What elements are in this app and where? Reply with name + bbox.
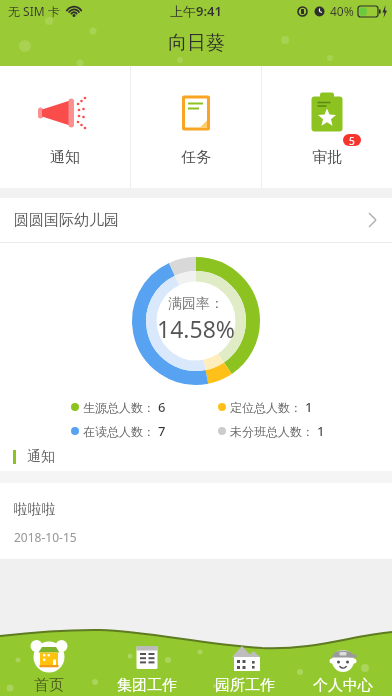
button[interactable]: 个人中心: [294, 640, 392, 696]
button[interactable]: 啦啦啦: [0, 483, 392, 560]
staticText: 上午9:41: [170, 2, 222, 20]
button[interactable]: 5: [262, 66, 392, 188]
staticText: 40%: [330, 3, 354, 19]
staticText: 14.58%: [157, 313, 235, 344]
staticText: 集团工作: [117, 676, 177, 695]
staticText: 定位总人数：: [230, 400, 302, 415]
staticText: 未分班总人数：: [230, 424, 314, 439]
staticText: 任务: [181, 148, 211, 167]
staticText: 圆圆国际幼儿园: [14, 211, 119, 230]
button[interactable]: 任务: [131, 66, 261, 188]
staticText: 5: [349, 134, 355, 146]
staticText: 个人中心: [313, 676, 373, 695]
staticText: 无 SIM 卡: [8, 3, 60, 19]
staticText: 1: [317, 422, 325, 440]
button[interactable]: 园所工作: [196, 640, 294, 696]
staticText: 通知: [27, 448, 55, 466]
staticText: 向日葵: [168, 31, 225, 55]
staticText: 啦啦啦: [14, 501, 56, 519]
staticText: 7: [158, 422, 166, 440]
staticText: 园所工作: [215, 676, 275, 695]
staticText: 生源总人数：: [83, 400, 155, 415]
staticText: 6: [158, 398, 166, 416]
staticText: 审批: [312, 148, 342, 167]
staticText: 1: [305, 398, 313, 416]
staticText: 2018-10-15: [14, 529, 77, 545]
staticText: 首页: [34, 676, 64, 695]
button[interactable]: 通知: [0, 66, 130, 188]
button[interactable]: 圆圆国际幼儿园: [0, 198, 392, 242]
button[interactable]: 集团工作: [98, 640, 196, 696]
staticText: 在读总人数：: [83, 424, 155, 439]
staticText: 通知: [50, 148, 80, 167]
staticText: 满园率：: [168, 295, 224, 313]
button[interactable]: 首页: [0, 640, 98, 696]
